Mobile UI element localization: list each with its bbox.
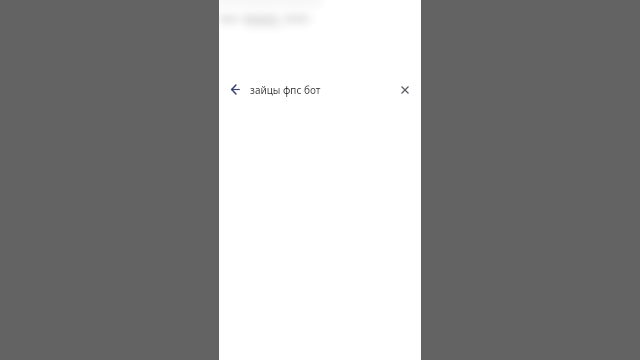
button[interactable]: Clear search	[395, 80, 415, 100]
staticText: зайцы фпс бот	[250, 83, 321, 97]
button[interactable]: Back	[225, 79, 245, 99]
button[interactable]: зайцы фпс бот	[250, 82, 321, 97]
